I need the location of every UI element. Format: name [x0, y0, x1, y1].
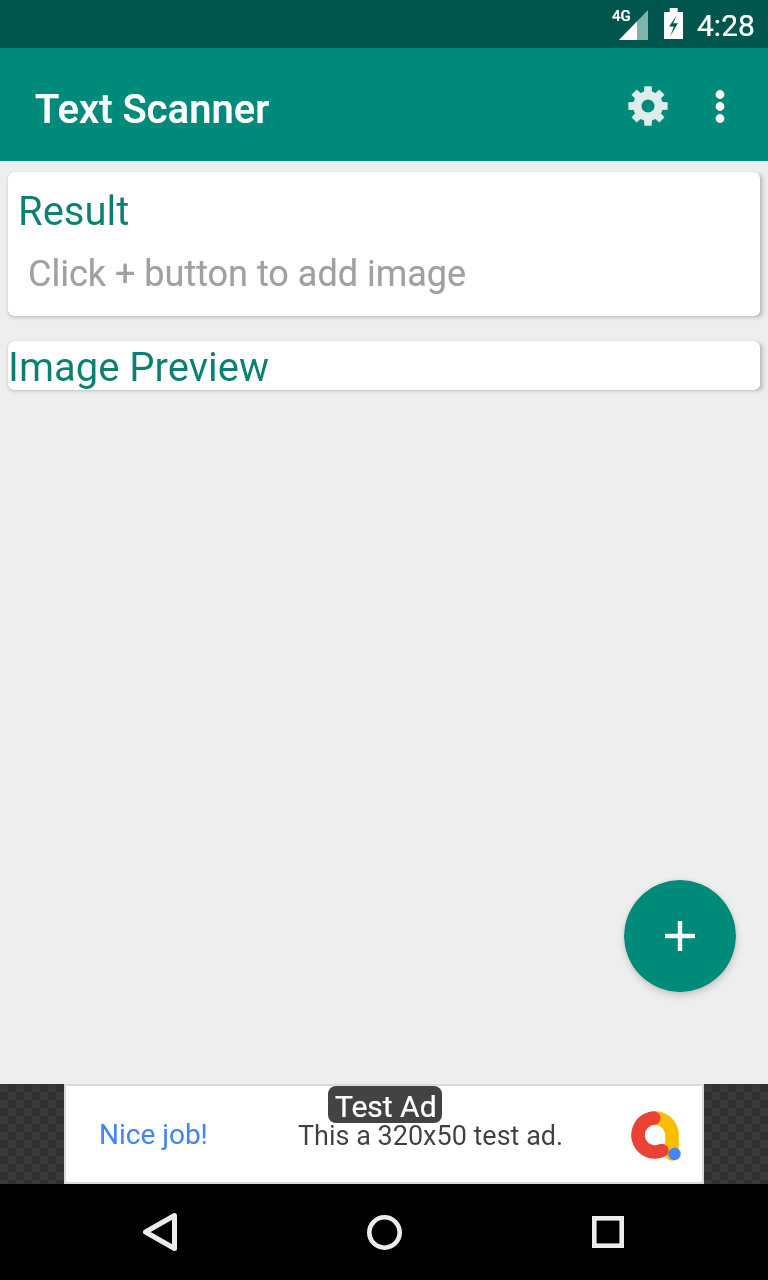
button[interactable]: Result — [8, 172, 760, 316]
staticText: Test Ad — [335, 1089, 437, 1123]
staticText: Text Scanner — [35, 86, 270, 133]
staticText: Result — [18, 188, 130, 235]
button[interactable]: Recents — [558, 1184, 658, 1280]
button[interactable]: Nice job! — [66, 1086, 702, 1182]
staticText: Click + button to add image — [28, 253, 467, 295]
staticText: This a 320x50 test ad. — [298, 1120, 564, 1152]
button[interactable]: Home — [334, 1184, 434, 1280]
staticText: 4G — [612, 7, 631, 25]
button[interactable]: Back — [110, 1184, 210, 1280]
staticText: Image Preview — [8, 344, 270, 390]
button[interactable]: More options — [672, 58, 768, 154]
button[interactable]: Add image — [624, 880, 736, 992]
staticText: 4:28 — [697, 8, 755, 43]
button[interactable]: Image Preview — [8, 341, 760, 390]
button[interactable]: Settings — [600, 58, 696, 154]
staticText: Nice job! — [99, 1118, 208, 1151]
